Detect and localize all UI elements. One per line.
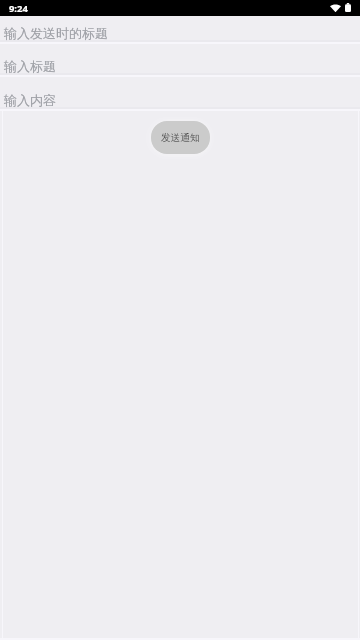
staticText: 9:24	[9, 2, 28, 15]
button[interactable]: 输入发送时的标题	[0, 16, 360, 44]
button[interactable]: 输入标题	[0, 44, 360, 77]
staticText: 输入内容	[4, 92, 56, 108]
other: Battery	[345, 3, 351, 12]
other: Wi-Fi	[330, 5, 341, 12]
button[interactable]: 输入内容	[0, 77, 360, 111]
staticText: 输入发送时的标题	[4, 25, 108, 41]
button[interactable]: 发送通知	[151, 121, 210, 154]
staticText: 输入标题	[4, 58, 56, 74]
staticText: 发送通知	[161, 132, 200, 144]
